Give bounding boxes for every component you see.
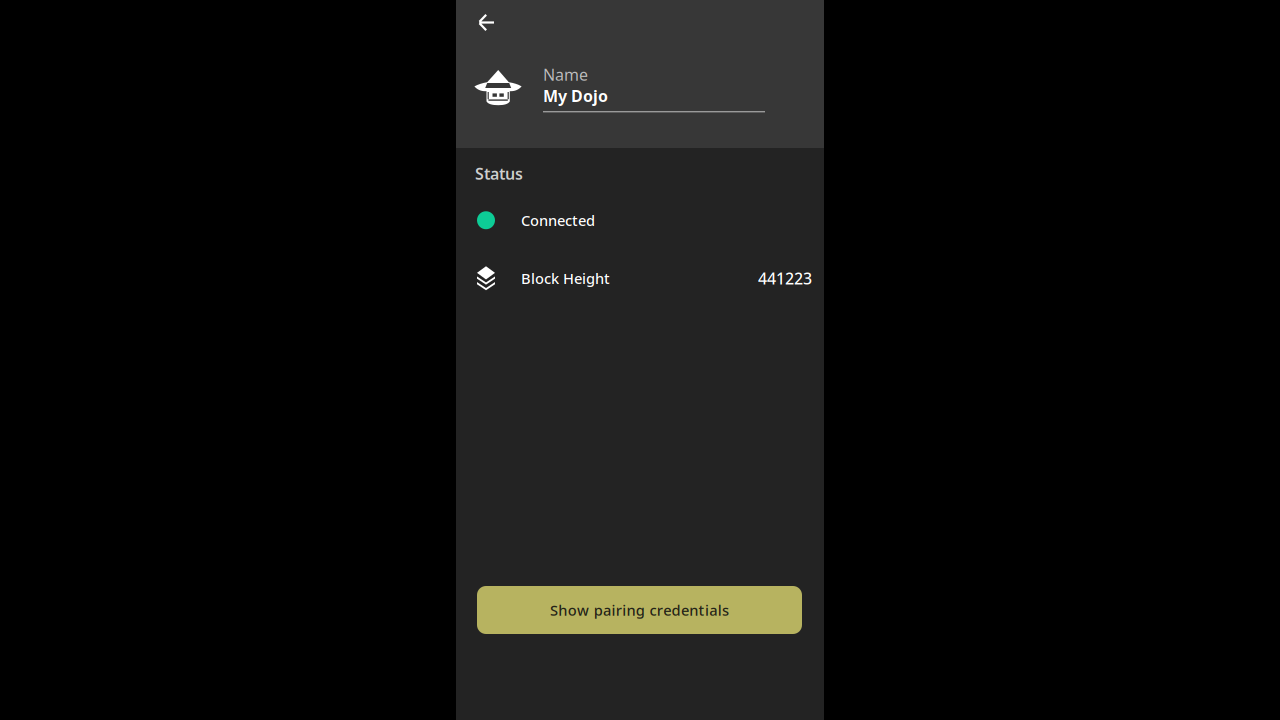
staticText: Name	[543, 64, 588, 85]
staticText: Block Height	[521, 268, 610, 288]
button[interactable]: Name	[543, 64, 765, 112]
staticText: Show pairing credentials	[550, 600, 729, 620]
button[interactable]: Show pairing credentials	[477, 586, 802, 634]
staticText: Connected	[521, 210, 595, 230]
staticText: My Dojo	[543, 85, 608, 106]
button[interactable]: Back	[456, 0, 508, 45]
staticText: 441223	[758, 268, 812, 289]
staticText: Status	[475, 163, 523, 184]
